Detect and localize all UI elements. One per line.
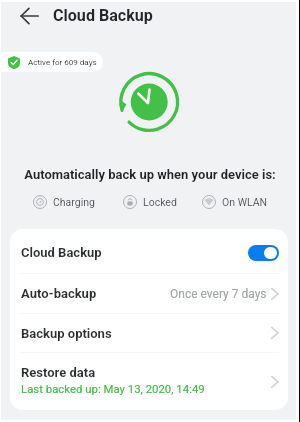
staticText: Last backed up: May 13, 2020, 14:49: [21, 382, 205, 395]
button[interactable]: Backup options: [10, 314, 288, 352]
staticText: Cloud Backup: [53, 6, 153, 25]
staticText: Restore data: [21, 365, 96, 380]
staticText: Charging: [53, 196, 95, 208]
staticText: Automatically back up when your device i…: [0, 167, 300, 182]
button[interactable]: Restore data: [10, 353, 288, 410]
staticText: Cloud Backup: [21, 245, 102, 260]
staticText: Active for 609 days: [28, 58, 97, 67]
staticText: Backup options: [21, 326, 112, 341]
staticText: On WLAN: [222, 196, 268, 208]
button[interactable]: Back: [16, 2, 44, 30]
staticText: Locked: [143, 196, 177, 208]
button[interactable]: Auto-backup: [10, 274, 288, 313]
staticText: Auto-backup: [21, 286, 97, 301]
staticText: Once every 7 days: [170, 287, 267, 301]
button[interactable]: Cloud Backup: [10, 229, 288, 273]
